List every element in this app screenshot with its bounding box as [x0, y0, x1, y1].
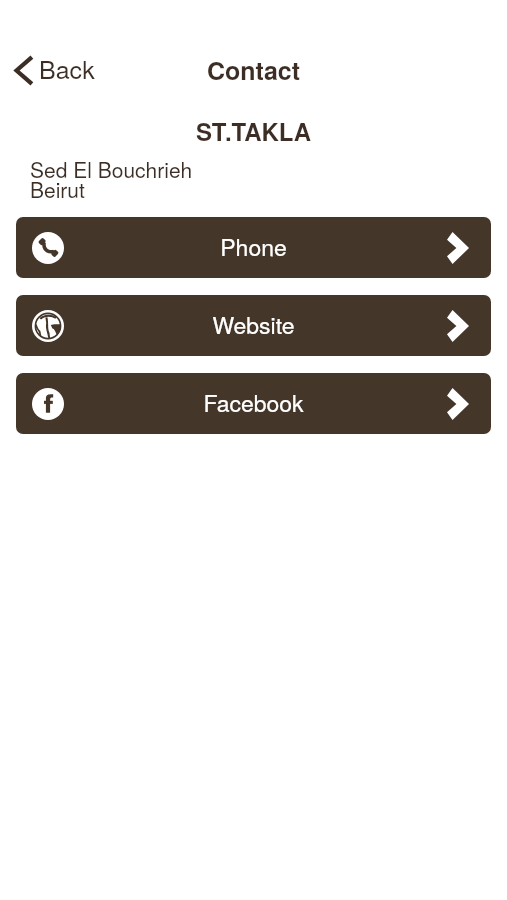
button[interactable]: Phone — [16, 217, 491, 278]
other: Facebook — [32, 388, 64, 420]
staticText: Facebook — [16, 386, 491, 419]
other: Website — [32, 310, 64, 342]
staticText: Contact — [0, 52, 507, 88]
button[interactable]: Website — [16, 295, 491, 356]
button[interactable]: Facebook — [16, 373, 491, 434]
staticText: Phone — [16, 230, 491, 263]
button[interactable]: Back — [8, 50, 100, 90]
staticText: Sed El Bouchrieh — [30, 154, 193, 184]
other: Phone — [32, 232, 64, 264]
staticText: Back — [39, 50, 95, 86]
staticText: Website — [16, 308, 491, 341]
staticText: ST.TAKLA — [0, 114, 507, 148]
staticText: Beirut — [30, 174, 85, 204]
